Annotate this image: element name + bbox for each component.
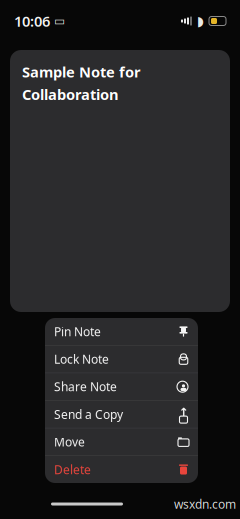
staticText: Pin Note xyxy=(54,323,101,339)
staticText: ▭ xyxy=(50,14,65,28)
staticText: wsxdn.com xyxy=(174,496,236,512)
button[interactable]: Send a Copy xyxy=(45,401,198,428)
button[interactable]: Lock Note xyxy=(45,346,198,373)
staticText: Send a Copy xyxy=(54,406,123,422)
staticText: Collaboration xyxy=(22,84,119,104)
button[interactable]: Share Note xyxy=(45,373,198,400)
staticText: 10:06 xyxy=(14,11,50,31)
button[interactable]: Move xyxy=(45,428,198,455)
button[interactable]: Delete xyxy=(45,456,198,483)
staticText: ↑ xyxy=(178,405,188,419)
staticText: Lock Note xyxy=(54,351,109,367)
staticText: ◗ xyxy=(197,13,204,28)
staticText: Share Note xyxy=(54,379,117,395)
staticText: Sample Note for xyxy=(22,62,141,81)
staticText: Delete xyxy=(54,461,91,477)
staticText: Move xyxy=(54,434,85,450)
button[interactable]: Pin Note xyxy=(45,318,198,345)
